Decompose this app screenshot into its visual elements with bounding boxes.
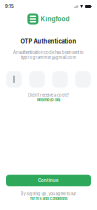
staticText: An authentication code has been sent to (13, 50, 84, 55)
staticText: By signing up, you agree to our (20, 191, 76, 196)
button[interactable]: Continue (6, 175, 91, 186)
button[interactable]: Resend (0:56) (37, 98, 60, 102)
staticText: OTP Authentication (20, 38, 76, 45)
staticText: Terms and Conditions (29, 196, 67, 201)
staticText: Didn't receive a code? (28, 93, 69, 98)
staticText: Kingfood (41, 15, 70, 23)
staticText: 9:15 (5, 4, 14, 9)
staticText: byprogrammer@gmail.com (20, 55, 76, 60)
staticText: Continue (38, 178, 59, 183)
button[interactable]: Terms and Conditions (29, 196, 67, 201)
staticText: Resend (0:56) (37, 98, 60, 102)
